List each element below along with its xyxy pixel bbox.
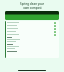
button[interactable]: Item status — [7, 33, 59, 36]
button[interactable]: Item status — [7, 21, 59, 24]
other: Item status — [54, 25, 56, 27]
button[interactable] — [5, 11, 59, 20]
button[interactable]: Item status — [7, 24, 59, 27]
staticText: Spring clean your — [20, 2, 44, 6]
button[interactable]: Item status — [7, 27, 59, 30]
staticText: own compost — [23, 6, 42, 10]
other: Item status — [54, 34, 56, 36]
other: Item status — [54, 31, 56, 33]
button[interactable]: Item status — [7, 30, 59, 33]
other: Item status — [54, 28, 56, 30]
other: Item status — [54, 22, 56, 24]
